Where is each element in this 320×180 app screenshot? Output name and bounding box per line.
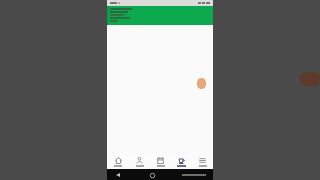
- button[interactable]: Recents: [181, 170, 207, 180]
- button[interactable]: Menu: [192, 154, 213, 169]
- button[interactable]: Agenda: [150, 154, 171, 169]
- button[interactable]: Cafeteria: [171, 154, 192, 169]
- button[interactable]: Home: [147, 170, 157, 180]
- button[interactable]: Back: [113, 170, 123, 180]
- button[interactable]: Mis Hijos: [129, 154, 150, 169]
- button[interactable]: [110, 8, 132, 22]
- button[interactable]: Inicio: [107, 154, 129, 169]
